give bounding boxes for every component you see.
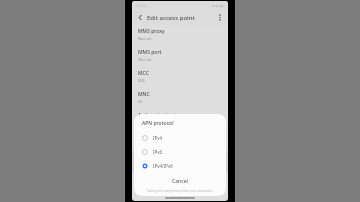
staticText: Edit access point — [147, 14, 195, 22]
staticText: MCC — [138, 70, 149, 77]
button[interactable]: MMS proxy — [132, 25, 228, 46]
staticText: IPv4/IPv6 — [138, 162, 156, 167]
staticText: 505 — [138, 78, 145, 83]
button[interactable]: APN protocol — [132, 151, 228, 172]
staticText: 01 — [138, 99, 143, 104]
button[interactable]: APN type — [132, 130, 228, 151]
button[interactable]: More options — [215, 13, 224, 22]
button[interactable]: Back — [136, 13, 145, 22]
staticText: Cancel — [172, 178, 188, 185]
button[interactable]: IPv6 — [134, 145, 226, 159]
button[interactable]: MMS port — [132, 46, 228, 67]
button[interactable]: Cancel — [134, 176, 226, 187]
staticText: APN protocol — [142, 120, 174, 127]
staticText: MMS port — [138, 49, 162, 56]
button[interactable]: Authentication type — [132, 109, 228, 130]
staticText: APN type — [138, 133, 161, 140]
staticText: APN protocol — [138, 154, 170, 161]
staticText: IPv4 — [153, 135, 163, 141]
staticText: IPv6 — [153, 149, 163, 155]
staticText: MMS proxy — [138, 28, 165, 35]
button[interactable]: IPv4 — [134, 131, 226, 145]
button[interactable]: MNC — [132, 88, 228, 109]
staticText: Not set — [138, 36, 152, 41]
staticText: Authentication type — [138, 112, 186, 119]
staticText: None — [138, 120, 149, 125]
staticText: 10:24 — [136, 3, 147, 8]
staticText: IPv4/IPv6 — [153, 163, 173, 169]
staticText: Not set — [138, 57, 152, 62]
staticText: MNC — [138, 91, 150, 98]
button[interactable]: MCC — [132, 67, 228, 88]
button[interactable]: IPv4/IPv6 — [134, 159, 226, 173]
staticText: Saving this change may affect your conne… — [134, 189, 226, 193]
